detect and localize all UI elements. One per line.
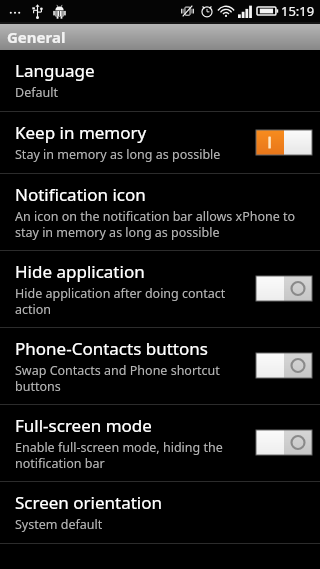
staticText: System default (15, 516, 103, 533)
button[interactable]: Toggle off (256, 276, 312, 301)
staticText: General (7, 27, 66, 47)
button[interactable]: Language (0, 50, 320, 111)
button[interactable]: Phone-Contacts buttons (0, 328, 320, 404)
button[interactable]: Toggle off (256, 430, 312, 455)
staticText: Notification icon (15, 183, 146, 206)
button[interactable]: Full-screen mode (0, 405, 320, 481)
staticText: Full-screen mode (15, 414, 152, 437)
button[interactable]: Toggle off (256, 353, 312, 378)
button[interactable]: Keep in memory (0, 112, 320, 173)
staticText: Hide application (15, 260, 145, 283)
staticText: Default (15, 84, 58, 101)
button[interactable]: Notification icon (0, 174, 320, 250)
staticText: Language (15, 59, 95, 82)
staticText: Hide application after doing contact act… (15, 285, 248, 317)
staticText: Phone-Contacts buttons (15, 337, 208, 360)
staticText: Screen orientation (15, 491, 163, 514)
staticText: 15:19 (281, 2, 315, 20)
button[interactable]: Hide application (0, 251, 320, 327)
staticText: Enable full-screen mode, hiding the noti… (15, 439, 248, 471)
staticText: Stay in memory as long as possible (15, 146, 221, 163)
staticText: An icon on the notification bar allows x… (15, 208, 312, 240)
button[interactable]: Screen orientation (0, 482, 320, 543)
button[interactable]: Toggle on (256, 130, 312, 155)
staticText: Keep in memory (15, 121, 147, 144)
staticText: Swap Contacts and Phone shortcut buttons (15, 362, 248, 394)
